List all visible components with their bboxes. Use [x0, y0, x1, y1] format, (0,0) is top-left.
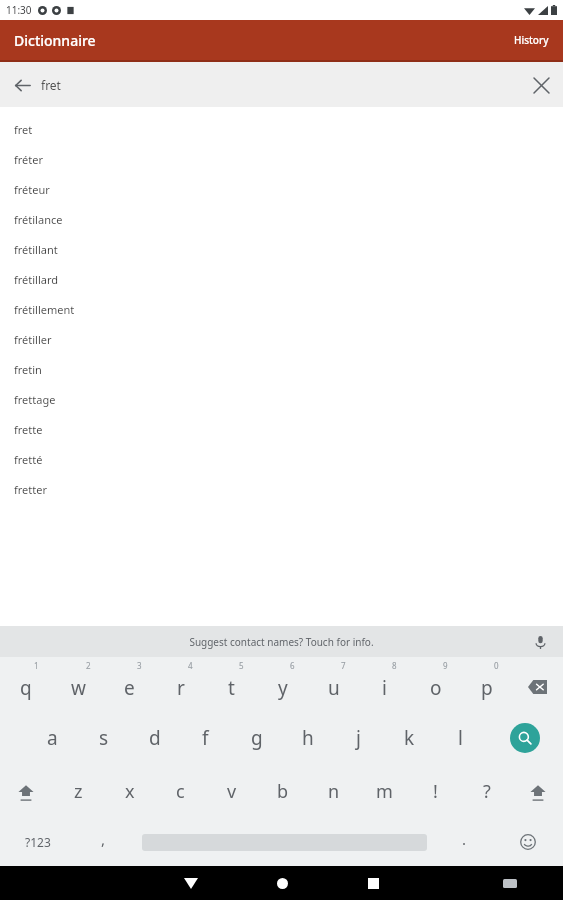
button[interactable]: History: [500, 23, 563, 57]
staticText: 7: [341, 660, 346, 671]
staticText: !: [433, 779, 438, 804]
button[interactable]: frétiller: [0, 324, 563, 354]
button[interactable]: !: [410, 765, 461, 818]
button[interactable]: p: [461, 657, 512, 711]
button[interactable]: Suggest contact names? Touch for info.: [0, 626, 563, 657]
button[interactable]: Backspace: [512, 657, 563, 711]
button[interactable]: Emoji: [492, 818, 563, 866]
button[interactable]: w: [52, 657, 104, 711]
button[interactable]: f: [180, 711, 231, 765]
button[interactable]: ,: [76, 818, 131, 866]
button[interactable]: a: [27, 711, 78, 765]
staticText: Suggest contact names? Touch for info.: [189, 635, 374, 649]
staticText: 8: [392, 660, 397, 671]
staticText: c: [176, 779, 185, 804]
staticText: t: [228, 675, 235, 701]
staticText: ?: [483, 779, 491, 804]
staticText: Dictionnaire: [14, 31, 96, 50]
staticText: l: [458, 725, 463, 751]
button[interactable]: o: [410, 657, 461, 711]
button[interactable]: k: [384, 711, 435, 765]
button[interactable]: d: [129, 711, 180, 765]
button[interactable]: frétillement: [0, 294, 563, 324]
button[interactable]: z: [52, 765, 104, 818]
button[interactable]: m: [359, 765, 410, 818]
staticText: g: [251, 725, 263, 751]
button[interactable]: frette: [0, 414, 563, 444]
staticText: 3: [137, 660, 142, 671]
button[interactable]: s: [78, 711, 129, 765]
button[interactable]: t: [206, 657, 257, 711]
button[interactable]: Home: [265, 866, 299, 900]
button[interactable]: .: [437, 818, 492, 866]
button[interactable]: Back: [0, 63, 44, 107]
button[interactable]: l: [435, 711, 486, 765]
button[interactable]: Clear: [519, 63, 563, 107]
staticText: u: [328, 675, 340, 701]
staticText: p: [481, 675, 493, 701]
button[interactable]: Search: [486, 711, 563, 765]
button[interactable]: h: [282, 711, 333, 765]
button[interactable]: n: [308, 765, 359, 818]
button[interactable]: ?123: [0, 818, 76, 866]
button[interactable]: frétilance: [0, 204, 563, 234]
staticText: x: [125, 779, 135, 804]
button[interactable]: Recents: [356, 866, 390, 900]
staticText: frétillant: [14, 242, 58, 257]
staticText: 6: [290, 660, 295, 671]
button[interactable]: Voice input: [529, 631, 551, 653]
button[interactable]: c: [155, 765, 206, 818]
staticText: e: [124, 675, 135, 701]
staticText: o: [430, 675, 442, 701]
button[interactable]: g: [231, 711, 282, 765]
button[interactable]: Shift: [0, 765, 52, 818]
button[interactable]: fretin: [0, 354, 563, 384]
staticText: frétilance: [14, 212, 63, 227]
staticText: w: [71, 675, 86, 701]
button[interactable]: fretter: [0, 474, 563, 504]
staticText: y: [278, 675, 288, 701]
button[interactable]: x: [104, 765, 155, 818]
button[interactable]: r: [155, 657, 206, 711]
button[interactable]: u: [308, 657, 359, 711]
staticText: i: [382, 675, 387, 701]
button[interactable]: y: [257, 657, 308, 711]
button[interactable]: v: [206, 765, 257, 818]
staticText: 4: [188, 660, 193, 671]
button[interactable]: Back: [174, 866, 208, 900]
button[interactable]: ?: [461, 765, 512, 818]
button[interactable]: q: [0, 657, 52, 711]
staticText: 9: [443, 660, 448, 671]
button[interactable]: j: [333, 711, 384, 765]
button[interactable]: Space: [131, 818, 437, 866]
button[interactable]: fréteur: [0, 174, 563, 204]
staticText: 1: [34, 660, 39, 671]
staticText: ?123: [25, 834, 51, 850]
staticText: fretté: [14, 452, 43, 467]
staticText: fretter: [14, 482, 47, 497]
staticText: b: [277, 779, 289, 804]
button[interactable]: frétillant: [0, 234, 563, 264]
button[interactable]: fret: [0, 114, 563, 144]
staticText: j: [356, 725, 361, 751]
staticText: 5: [239, 660, 244, 671]
button[interactable]: b: [257, 765, 308, 818]
staticText: fret: [41, 77, 61, 93]
button[interactable]: frettage: [0, 384, 563, 414]
staticText: frétillard: [14, 272, 59, 287]
button[interactable]: fretté: [0, 444, 563, 474]
staticText: s: [99, 725, 109, 751]
button[interactable]: Keyboard: [495, 868, 525, 898]
staticText: frétiller: [14, 332, 52, 347]
staticText: 0: [494, 660, 499, 671]
staticText: History: [514, 33, 549, 47]
staticText: m: [376, 779, 393, 804]
staticText: .: [462, 829, 467, 849]
staticText: 11:30: [6, 3, 32, 17]
button[interactable]: Shift: [512, 765, 563, 818]
button[interactable]: frétillard: [0, 264, 563, 294]
staticText: ,: [101, 829, 106, 849]
button[interactable]: e: [104, 657, 155, 711]
button[interactable]: fréter: [0, 144, 563, 174]
button[interactable]: i: [359, 657, 410, 711]
